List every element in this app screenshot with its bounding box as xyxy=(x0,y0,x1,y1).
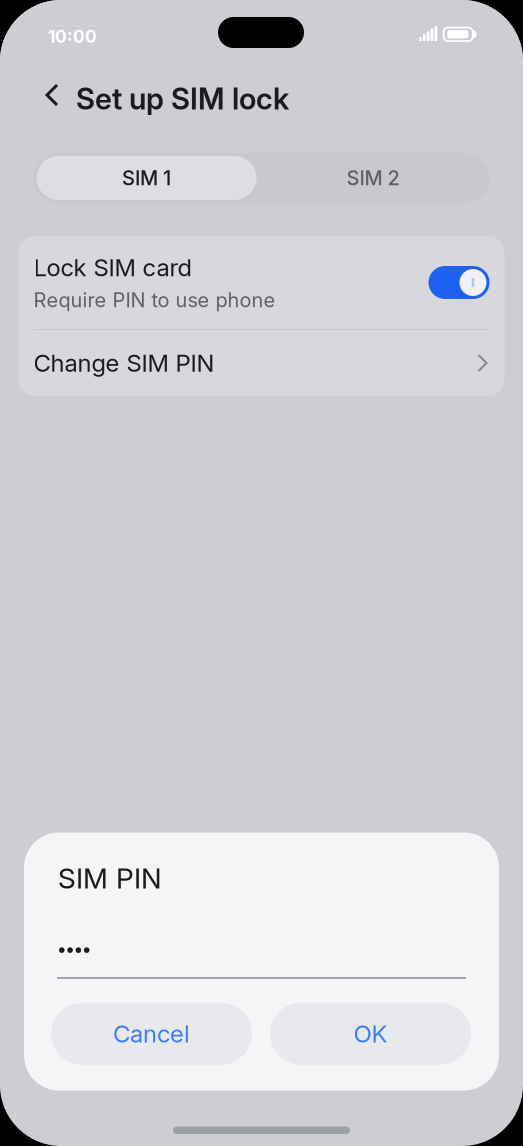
button[interactable]: Change SIM PIN xyxy=(18,330,504,396)
button[interactable]: SIM 1 xyxy=(36,156,256,200)
staticText: Change SIM PIN xyxy=(33,348,214,377)
staticText: Require PIN to use phone xyxy=(33,288,275,312)
button[interactable]: SIM 2 xyxy=(256,156,489,200)
button[interactable]: Lock SIM card xyxy=(18,236,504,329)
staticText: SIM 2 xyxy=(346,166,399,190)
staticText: OK xyxy=(353,1019,387,1048)
staticText: SIM 1 xyxy=(122,166,171,190)
staticText: 10:00 xyxy=(48,26,97,47)
button[interactable]: Back xyxy=(32,72,72,118)
staticText: Cancel xyxy=(113,1019,190,1048)
button[interactable]: OK xyxy=(270,1003,471,1065)
button[interactable]: Cancel xyxy=(51,1003,252,1065)
staticText: SIM PIN xyxy=(58,861,162,895)
staticText: Set up SIM lock xyxy=(76,81,289,116)
staticText: Lock SIM card xyxy=(33,253,191,282)
